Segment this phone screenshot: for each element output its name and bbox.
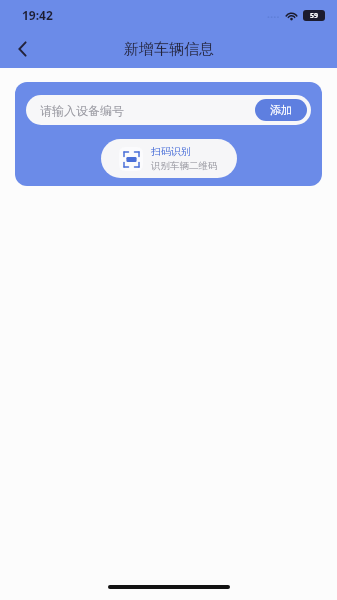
staticText: 添加	[270, 103, 292, 117]
staticText: 识别车辆二维码	[151, 160, 218, 172]
staticText: 请输入设备编号	[40, 103, 124, 118]
button[interactable]: Back	[0, 30, 44, 68]
staticText: 新增车辆信息	[124, 40, 214, 59]
staticText: 19:42	[22, 7, 53, 23]
staticText: 59	[310, 11, 319, 21]
button[interactable]: 添加	[255, 99, 307, 121]
staticText: 扫码识别	[151, 145, 191, 158]
button[interactable]: 扫码识别	[101, 139, 237, 178]
